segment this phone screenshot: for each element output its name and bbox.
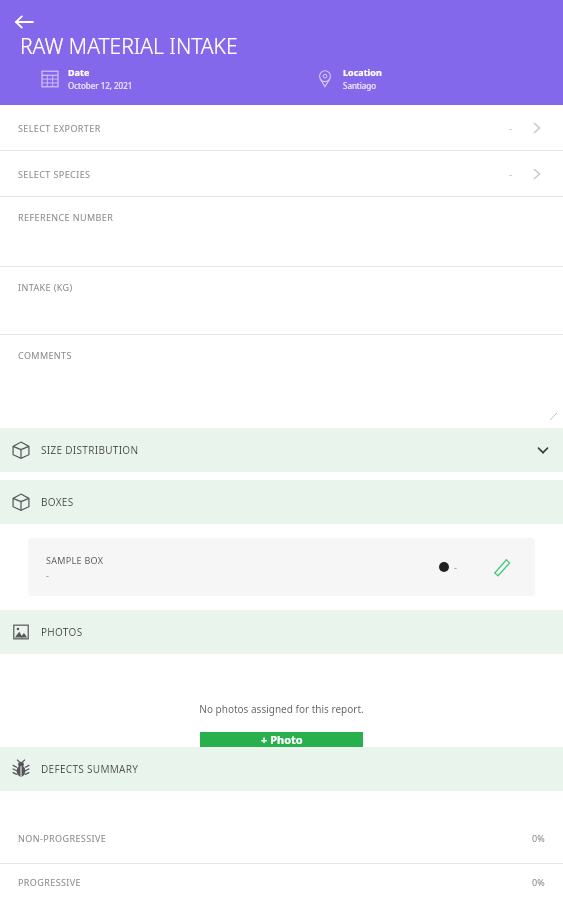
staticText: October 12, 2021 bbox=[68, 80, 133, 91]
staticText: SELECT SPECIES bbox=[18, 168, 91, 180]
button[interactable]: REFERENCE NUMBER bbox=[0, 197, 563, 266]
staticText: - bbox=[509, 167, 513, 181]
staticText: Date bbox=[68, 66, 90, 78]
button[interactable]: SELECT SPECIES bbox=[0, 151, 563, 196]
staticText: 0% bbox=[532, 832, 545, 844]
staticText: DEFECTS SUMMARY bbox=[41, 762, 139, 776]
button[interactable]: Edit box bbox=[487, 552, 517, 582]
staticText: - bbox=[46, 569, 49, 581]
staticText: RAW MATERIAL INTAKE bbox=[20, 32, 238, 61]
button[interactable]: DEFECTS SUMMARY bbox=[0, 747, 563, 791]
button[interactable]: Back bbox=[4, 2, 44, 42]
staticText: REFERENCE NUMBER bbox=[18, 211, 114, 223]
button[interactable]: PHOTOS bbox=[0, 610, 563, 654]
staticText: INTAKE (KG) bbox=[18, 281, 73, 293]
button[interactable]: + Photo bbox=[200, 732, 363, 747]
button[interactable]: PROGRESSIVE bbox=[0, 864, 563, 900]
staticText: No photos assigned for this report. bbox=[199, 702, 364, 716]
staticText: COMMENTS bbox=[18, 349, 72, 361]
staticText: BOXES bbox=[41, 495, 74, 509]
staticText: NON-PROGRESSIVE bbox=[18, 832, 107, 844]
staticText: 0% bbox=[532, 876, 545, 888]
staticText: Santiago bbox=[343, 80, 377, 91]
staticText: SIZE DISTRIBUTION bbox=[41, 443, 139, 457]
button[interactable]: NON-PROGRESSIVE bbox=[0, 813, 563, 863]
staticText: - bbox=[454, 561, 457, 573]
staticText: Location bbox=[343, 66, 382, 78]
button[interactable]: INTAKE (KG) bbox=[0, 267, 563, 334]
button[interactable]: COMMENTS bbox=[0, 335, 563, 428]
button[interactable]: SELECT EXPORTER bbox=[0, 105, 563, 150]
staticText: - bbox=[509, 121, 513, 135]
staticText: PROGRESSIVE bbox=[18, 876, 81, 888]
staticText: SELECT EXPORTER bbox=[18, 122, 101, 134]
button[interactable]: SAMPLE BOX bbox=[28, 538, 535, 596]
staticText: SAMPLE BOX bbox=[46, 554, 104, 566]
button[interactable]: SIZE DISTRIBUTION bbox=[0, 428, 563, 472]
staticText: PHOTOS bbox=[41, 625, 83, 639]
staticText: + Photo bbox=[261, 732, 303, 747]
button[interactable]: BOXES bbox=[0, 480, 563, 524]
